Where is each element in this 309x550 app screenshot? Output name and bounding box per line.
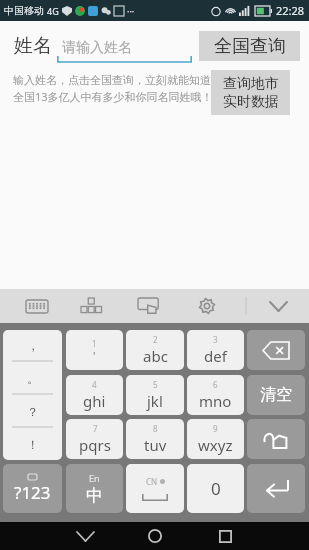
button[interactable]: 请输入姓名: [57, 35, 192, 63]
button[interactable]: 7: [66, 419, 123, 459]
staticText: 3: [213, 334, 218, 345]
button[interactable]: Backspace: [247, 330, 305, 370]
staticText: ？: [27, 404, 39, 419]
staticText: En: [89, 472, 100, 484]
staticText: 5: [153, 379, 158, 390]
button[interactable]: 查询地市 实时数据: [211, 70, 290, 115]
staticText: 9: [213, 423, 218, 434]
staticText: mno: [199, 391, 232, 411]
staticText: def: [204, 346, 227, 366]
staticText: ···: [127, 5, 135, 17]
staticText: ！: [27, 437, 39, 452]
button[interactable]: 1: [66, 330, 123, 370]
staticText: 输入姓名，点击全国查询，立刻就能知道全国13多亿人中有多少和你同名同姓哦！: [13, 73, 215, 104]
button[interactable]: Hide keyboard: [263, 291, 293, 321]
staticText: 6: [213, 379, 218, 390]
staticText: 4G: [47, 5, 59, 17]
staticText: tuv: [144, 435, 167, 455]
button[interactable]: Keyboard layout: [22, 291, 52, 321]
button[interactable]: Language: [66, 464, 123, 513]
staticText: 0: [211, 477, 221, 500]
staticText: pqrs: [79, 435, 111, 455]
staticText: 1: [92, 338, 97, 349]
button[interactable]: 4: [66, 375, 123, 415]
staticText: ghi: [83, 391, 106, 411]
button[interactable]: 全国查询: [199, 31, 300, 61]
button[interactable]: Punctuation: [3, 330, 62, 460]
button[interactable]: 6: [187, 375, 244, 415]
staticText: 中国移动: [4, 4, 44, 17]
staticText: 4: [92, 379, 97, 390]
button[interactable]: Handwriting input: [134, 291, 164, 321]
button[interactable]: 2: [126, 330, 184, 370]
button[interactable]: Back: [64, 522, 106, 550]
staticText: 姓名: [14, 34, 52, 58]
staticText: wxyz: [198, 435, 233, 455]
button[interactable]: Enter: [247, 464, 305, 513]
staticText: ，: [27, 338, 39, 353]
button[interactable]: Arrow keys: [78, 291, 108, 321]
button[interactable]: 0: [187, 464, 244, 513]
staticText: CN: [146, 476, 158, 487]
button[interactable]: Recent apps: [204, 522, 246, 550]
staticText: 8: [153, 423, 158, 434]
staticText: 清空: [260, 385, 292, 405]
button[interactable]: 5: [126, 375, 184, 415]
staticText: 请输入姓名: [62, 39, 132, 57]
staticText: 全国查询: [214, 35, 286, 58]
staticText: 2: [153, 334, 158, 345]
staticText: 。: [27, 371, 39, 386]
staticText: ?123: [14, 481, 51, 504]
staticText: jkl: [147, 391, 163, 411]
staticText: 7: [93, 423, 98, 434]
button[interactable]: 3: [187, 330, 244, 370]
staticText: 中: [86, 485, 103, 506]
button[interactable]: Home: [134, 522, 176, 550]
button[interactable]: 9: [187, 419, 244, 459]
button[interactable]: Settings: [192, 291, 222, 321]
button[interactable]: Clear: [247, 375, 305, 415]
staticText: ': [93, 349, 96, 363]
button[interactable]: 8: [126, 419, 184, 459]
button[interactable]: CN: [126, 464, 184, 513]
button[interactable]: Handwriting: [247, 419, 305, 459]
staticText: abc: [143, 346, 168, 366]
button[interactable]: Symbols: [3, 464, 62, 513]
staticText: 查询地市 实时数据: [223, 75, 279, 111]
staticText: 22:28: [276, 3, 305, 18]
